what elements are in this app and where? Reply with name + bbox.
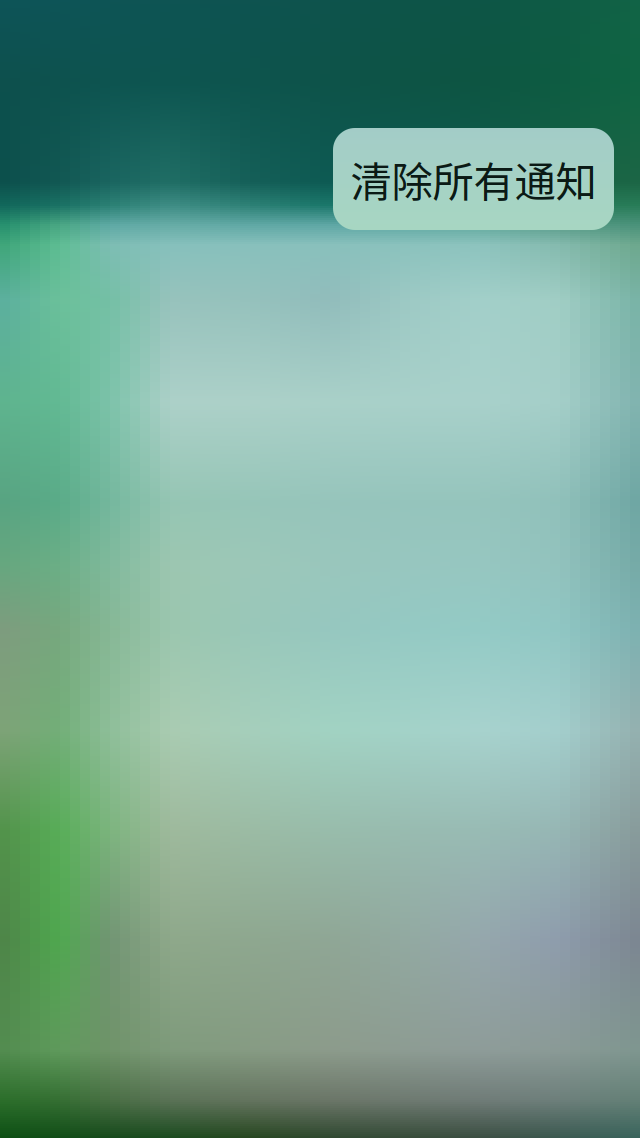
button[interactable]: 清除所有通知 [333, 128, 614, 230]
staticText: 清除所有通知 [350, 149, 596, 209]
